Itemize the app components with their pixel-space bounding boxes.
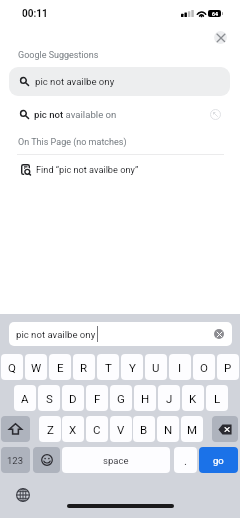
button[interactable]: I — [169, 354, 191, 380]
button[interactable]: go — [199, 447, 238, 473]
staticText: A — [21, 392, 29, 405]
button[interactable]: pic not available on — [0, 101, 240, 127]
button[interactable]: Backspace — [212, 416, 238, 442]
staticText: . — [184, 454, 188, 467]
button[interactable]: space — [62, 447, 170, 473]
staticText: K — [189, 392, 197, 405]
button[interactable]: W — [25, 354, 47, 380]
staticText: S — [46, 392, 53, 405]
staticText: Find “pic not availbe ony” — [36, 164, 139, 175]
button[interactable]: D — [62, 385, 84, 411]
staticText: Q — [8, 361, 16, 374]
staticText: space — [103, 455, 129, 466]
button[interactable]: P — [217, 354, 239, 380]
button[interactable]: Close suggestions — [214, 31, 227, 44]
button[interactable]: Emoji — [33, 447, 60, 473]
button[interactable]: H — [134, 385, 156, 411]
staticText: pic not availbe ony — [35, 76, 115, 87]
staticText: V — [117, 423, 125, 436]
staticText: E — [57, 361, 64, 374]
staticText: H — [141, 392, 150, 405]
button[interactable]: F — [86, 385, 108, 411]
staticText: F — [94, 392, 101, 405]
staticText: C — [93, 423, 101, 436]
staticText: J — [166, 392, 173, 405]
button[interactable]: pic not availbe ony — [9, 67, 230, 96]
staticText: L — [214, 392, 221, 405]
staticText: On This Page (no matches) — [18, 137, 127, 148]
staticText: M — [187, 423, 198, 436]
button[interactable]: R — [73, 354, 95, 380]
button[interactable]: 123 — [1, 447, 30, 473]
button[interactable]: Shift — [1, 416, 30, 442]
button[interactable]: M — [181, 416, 203, 442]
staticText: R — [80, 361, 88, 374]
button[interactable]: Y — [121, 354, 143, 380]
button[interactable]: K — [182, 385, 204, 411]
button[interactable]: V — [110, 416, 132, 442]
staticText: D — [69, 392, 77, 405]
button[interactable]: G — [110, 385, 132, 411]
staticText: U — [152, 361, 160, 374]
button[interactable]: Find “pic not availbe ony” — [0, 157, 240, 181]
button[interactable]: pic not availbe ony — [9, 322, 232, 346]
staticText: Y — [129, 361, 136, 374]
staticText: pic not available on — [34, 109, 117, 120]
staticText: N — [164, 423, 173, 436]
staticText: I — [178, 361, 182, 374]
button[interactable]: S — [38, 385, 60, 411]
button[interactable]: Q — [1, 354, 23, 380]
button[interactable]: O — [193, 354, 215, 380]
staticText: Google Suggestions — [18, 50, 99, 61]
staticText: W — [31, 361, 42, 374]
staticText: pic not availbe ony — [16, 329, 96, 340]
staticText: P — [224, 361, 232, 374]
staticText: G — [117, 392, 125, 405]
staticText: X — [69, 423, 77, 436]
staticText: 123 — [7, 455, 24, 466]
staticText: B — [140, 423, 148, 436]
button[interactable]: X — [62, 416, 84, 442]
staticText: 64 — [212, 11, 218, 17]
button[interactable]: L — [206, 385, 228, 411]
button[interactable]: E — [49, 354, 71, 380]
button[interactable]: Change keyboard language — [16, 488, 30, 502]
button[interactable]: A — [14, 385, 36, 411]
staticText: 00:11 — [22, 8, 48, 20]
button[interactable]: J — [158, 385, 180, 411]
button[interactable]: Clear text — [214, 329, 224, 339]
button[interactable]: C — [86, 416, 108, 442]
button[interactable]: B — [133, 416, 155, 442]
button[interactable]: T — [97, 354, 119, 380]
button[interactable]: N — [157, 416, 179, 442]
staticText: O — [200, 361, 208, 374]
button[interactable]: . — [174, 447, 197, 473]
button[interactable]: U — [145, 354, 167, 380]
staticText: go — [213, 455, 224, 466]
staticText: T — [105, 361, 112, 374]
staticText: Z — [47, 423, 54, 436]
button[interactable]: Z — [39, 416, 61, 442]
